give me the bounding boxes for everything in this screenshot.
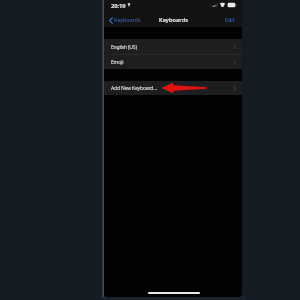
- button[interactable]: Edit: [217, 13, 242, 27]
- staticText: Add New Keyboard…: [111, 85, 157, 92]
- other: Back: [109, 17, 113, 24]
- button[interactable]: Emoji: [104, 55, 242, 69]
- staticText: English (US): [111, 44, 137, 51]
- button[interactable]: English (US): [104, 39, 242, 54]
- staticText: Emoji: [111, 59, 124, 66]
- staticText: Keyboards: [159, 16, 189, 24]
- staticText: 20:19: [111, 2, 126, 10]
- button[interactable]: Back: [108, 14, 142, 26]
- staticText: Keyboards: [114, 16, 141, 24]
- button[interactable]: Add New Keyboard…: [104, 81, 242, 95]
